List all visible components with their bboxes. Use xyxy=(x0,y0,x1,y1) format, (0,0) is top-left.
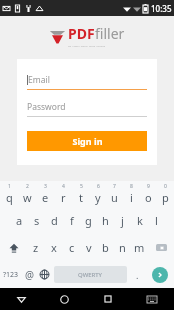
staticText: q xyxy=(6,190,13,205)
button[interactable]: d xyxy=(46,207,63,234)
staticText: p xyxy=(162,190,169,205)
staticText: w xyxy=(23,190,32,205)
staticText: Email xyxy=(28,74,50,86)
button[interactable]: v xyxy=(80,234,97,261)
staticText: 7 xyxy=(113,183,116,190)
staticText: s xyxy=(34,213,40,228)
button[interactable]: m xyxy=(131,234,148,261)
button[interactable]: c xyxy=(63,234,80,261)
staticText: h xyxy=(102,213,109,228)
staticText: x xyxy=(51,240,57,255)
button[interactable]: . xyxy=(129,261,146,288)
staticText: m xyxy=(134,240,145,255)
button[interactable]: 2 xyxy=(18,181,36,207)
button[interactable]: a xyxy=(10,207,28,234)
button[interactable]: 7 xyxy=(106,181,123,207)
staticText: PDF xyxy=(68,24,95,43)
button[interactable]: 0 xyxy=(157,181,174,207)
button[interactable]: l xyxy=(148,207,165,234)
staticText: z xyxy=(33,240,39,255)
staticText: filler xyxy=(95,24,125,43)
button[interactable]: k xyxy=(131,207,148,234)
staticText: c xyxy=(69,240,75,255)
button[interactable]: Switch keyboard xyxy=(130,288,174,310)
button[interactable]: s xyxy=(28,207,46,234)
button[interactable]: 1 xyxy=(0,181,18,207)
staticText: 6 xyxy=(97,183,100,190)
button[interactable]: 6 xyxy=(89,181,106,207)
staticText: l xyxy=(155,213,158,228)
button[interactable]: 5 xyxy=(72,181,89,207)
staticText: j xyxy=(121,213,124,228)
staticText: i xyxy=(130,190,133,205)
staticText: a xyxy=(16,213,23,228)
staticText: 0 xyxy=(164,183,167,190)
button[interactable]: n xyxy=(114,234,131,261)
button[interactable]: Backspace xyxy=(148,234,174,261)
staticText: ?123 xyxy=(3,270,19,280)
staticText: Fill • Sign • Send • Store • Online xyxy=(68,44,106,47)
staticText: Password xyxy=(27,101,66,113)
button[interactable]: 4 xyxy=(54,181,72,207)
button[interactable]: Email xyxy=(27,73,147,90)
staticText: 3 xyxy=(44,183,47,190)
button[interactable]: j xyxy=(114,207,131,234)
button[interactable]: Shift xyxy=(0,234,27,261)
staticText: 9 xyxy=(147,183,150,190)
staticText: QWERTY xyxy=(78,271,103,279)
staticText: u xyxy=(111,190,118,205)
staticText: 8 xyxy=(130,183,133,190)
button[interactable]: 8 xyxy=(123,181,140,207)
button[interactable]: Back xyxy=(0,288,43,310)
staticText: o xyxy=(145,190,152,205)
button[interactable]: h xyxy=(97,207,114,234)
button[interactable]: 9 xyxy=(140,181,157,207)
button[interactable]: Recent apps xyxy=(86,288,130,310)
staticText: Sign in xyxy=(72,135,103,147)
staticText: n xyxy=(119,240,126,255)
button[interactable]: x xyxy=(45,234,63,261)
button[interactable]: ?123 xyxy=(0,261,22,288)
button[interactable]: QWERTY xyxy=(54,266,127,283)
staticText: f xyxy=(70,213,74,228)
button[interactable]: Home xyxy=(43,288,86,310)
button[interactable]: g xyxy=(80,207,97,234)
staticText: 10:35 xyxy=(151,3,172,14)
staticText: y xyxy=(95,190,101,205)
staticText: k xyxy=(137,213,143,228)
staticText: r xyxy=(61,190,66,205)
staticText: v xyxy=(86,240,92,255)
button[interactable]: z xyxy=(27,234,45,261)
button[interactable]: b xyxy=(97,234,114,261)
button[interactable]: Change language xyxy=(37,261,52,288)
staticText: t xyxy=(79,190,83,205)
button[interactable]: Enter xyxy=(152,267,168,283)
staticText: . xyxy=(136,269,139,281)
staticText: 1 xyxy=(8,183,11,190)
button[interactable]: f xyxy=(63,207,80,234)
button[interactable]: @ xyxy=(22,261,37,288)
staticText: g xyxy=(85,213,92,228)
staticText: e xyxy=(42,190,49,205)
button[interactable]: Sign in xyxy=(27,131,147,151)
staticText: 2 xyxy=(26,183,29,190)
staticText: b xyxy=(102,240,109,255)
button[interactable]: Password xyxy=(27,100,147,117)
staticText: d xyxy=(51,213,58,228)
staticText: @ xyxy=(25,268,34,282)
staticText: 5 xyxy=(80,183,83,190)
staticText: 4 xyxy=(62,183,65,190)
button[interactable]: 3 xyxy=(36,181,54,207)
